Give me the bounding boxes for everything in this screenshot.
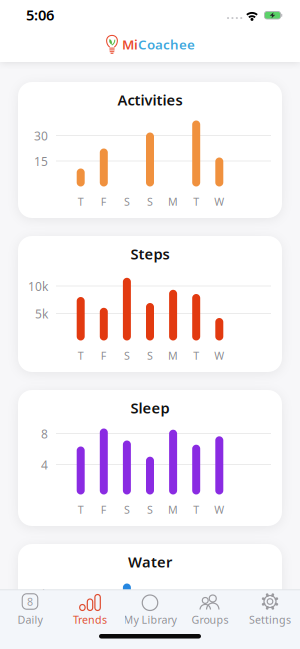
staticText: 15 xyxy=(34,153,48,169)
staticText: 2k xyxy=(35,586,48,602)
staticText: F xyxy=(101,502,107,517)
staticText: Activities xyxy=(117,90,182,109)
staticText: W xyxy=(214,194,224,209)
staticText: T xyxy=(78,502,84,517)
staticText: Daily xyxy=(17,612,42,627)
staticText: S xyxy=(124,348,130,363)
staticText: W xyxy=(214,502,224,517)
staticText: 8 xyxy=(27,594,33,609)
staticText: 30 xyxy=(34,128,48,144)
staticText: Groups xyxy=(191,612,228,627)
staticText: W xyxy=(214,348,224,363)
staticText: T xyxy=(193,348,199,363)
staticText: Sleep xyxy=(130,398,169,417)
staticText: S xyxy=(147,502,153,517)
staticText: 8 xyxy=(41,426,48,442)
staticText: Trends xyxy=(73,612,107,627)
staticText: T xyxy=(78,194,84,209)
staticText: 5:06 xyxy=(26,5,54,24)
button[interactable]: 8 xyxy=(0,589,60,636)
button[interactable]: Settings xyxy=(240,589,300,636)
staticText: S xyxy=(147,194,153,209)
staticText: S xyxy=(124,194,130,209)
staticText: Coachee xyxy=(138,35,195,53)
staticText: Mi xyxy=(122,35,138,53)
staticText: T xyxy=(193,502,199,517)
staticText: Steps xyxy=(130,244,169,263)
staticText: 10k xyxy=(28,278,48,294)
staticText: S xyxy=(124,502,130,517)
button[interactable]: Groups xyxy=(180,589,240,636)
staticText: M xyxy=(168,502,178,517)
button[interactable]: My Library xyxy=(120,589,180,636)
staticText: T xyxy=(193,194,199,209)
staticText: Water xyxy=(128,552,172,571)
staticText: T xyxy=(78,348,84,363)
staticText: 5k xyxy=(35,306,48,322)
button[interactable]: Trends xyxy=(60,589,120,636)
staticText: M xyxy=(168,194,178,209)
staticText: 1k xyxy=(35,614,48,630)
staticText: F xyxy=(101,348,107,363)
staticText: My Library xyxy=(123,612,176,627)
staticText: Settings xyxy=(249,612,291,627)
staticText: S xyxy=(147,348,153,363)
staticText: F xyxy=(101,194,107,209)
staticText: M xyxy=(168,348,178,363)
staticText: 4 xyxy=(41,457,48,473)
